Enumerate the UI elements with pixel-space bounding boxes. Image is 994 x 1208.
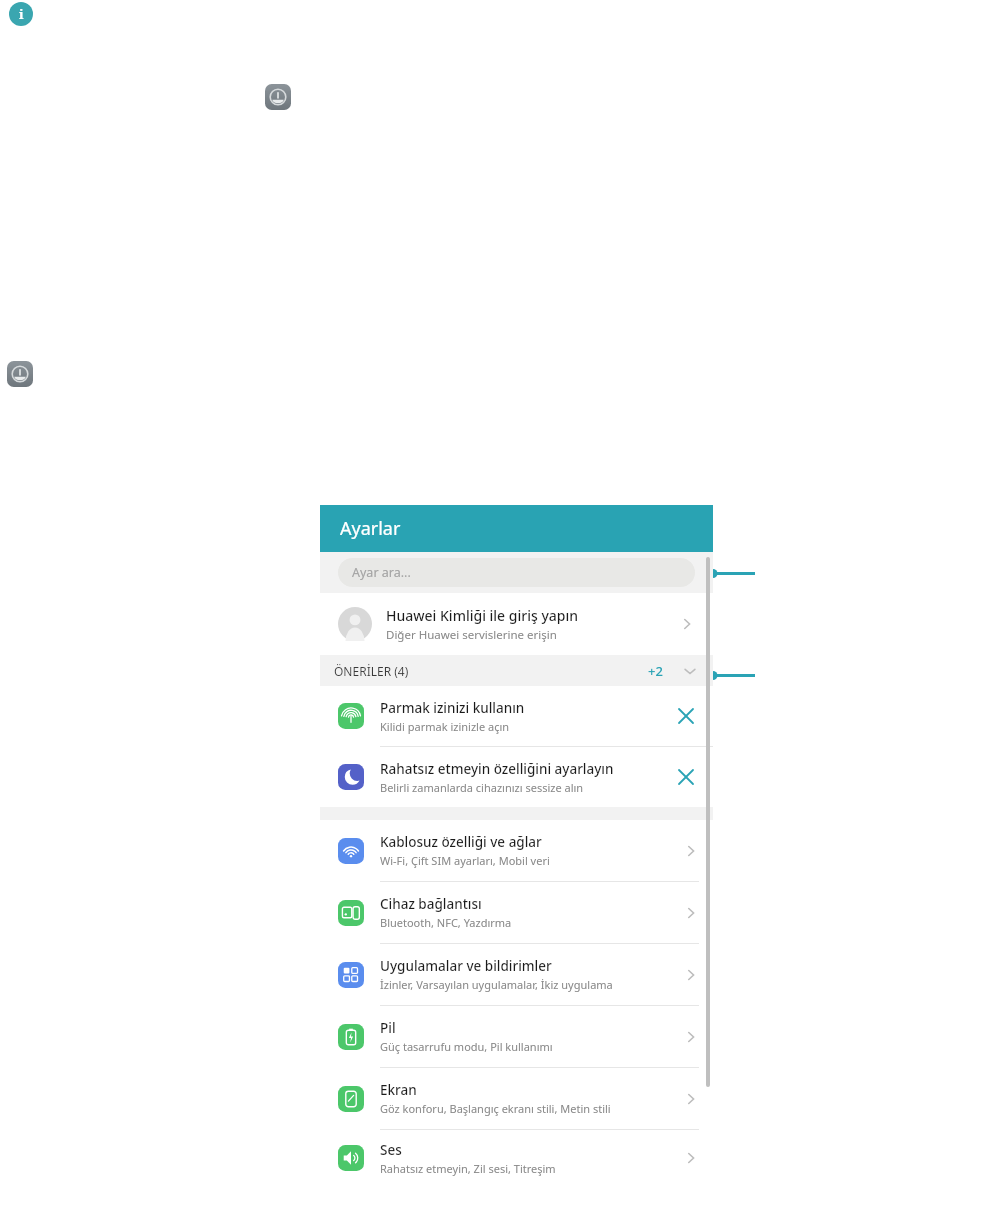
staticText: Cihaz bağlantısı [380, 895, 482, 913]
button[interactable]: Uygulamalar ve bildirimler [320, 944, 713, 1005]
staticText: Belirli zamanlarda cihazınızı sessize al… [380, 780, 584, 795]
button[interactable]: Parmak izinizi kullanın [320, 686, 713, 746]
staticText: i [19, 5, 24, 23]
staticText: Kilidi parmak izinizle açın [380, 719, 510, 734]
staticText: Rahatsız etmeyin, Zil sesi, Titreşim [380, 1161, 556, 1176]
button[interactable]: Ses [320, 1130, 713, 1186]
button[interactable]: Ekran [320, 1068, 713, 1129]
staticText: Kablosuz özelliği ve ağlar [380, 833, 542, 851]
staticText: +2 [648, 662, 663, 680]
button[interactable]: Kapat [673, 703, 699, 729]
staticText: Uygulamalar ve bildirimler [380, 957, 552, 975]
staticText: Diğer Huawei servislerine erişin [386, 627, 557, 643]
button[interactable]: Kablosuz özelliği ve ağlar [320, 820, 713, 881]
staticText: Ayarlar [340, 516, 401, 541]
staticText: Göz konforu, Başlangıç ekranı stili, Met… [380, 1101, 611, 1116]
staticText: Bluetooth, NFC, Yazdırma [380, 915, 512, 930]
staticText: ÖNERİLER (4) [334, 663, 409, 679]
staticText: Pil [380, 1019, 396, 1037]
button[interactable]: Huawei Kimliği ile giriş yapın [320, 593, 713, 655]
button[interactable]: Kapat [673, 764, 699, 790]
button[interactable]: Rahatsız etmeyin özelliğini ayarlayın [320, 747, 713, 807]
staticText: Huawei Kimliği ile giriş yapın [386, 606, 579, 625]
staticText: İzinler, Varsayılan uygulamalar, İkiz uy… [380, 977, 613, 992]
staticText: Rahatsız etmeyin özelliğini ayarlayın [380, 760, 614, 778]
staticText: Ekran [380, 1081, 417, 1099]
button[interactable]: ÖNERİLER (4) [320, 655, 713, 686]
button[interactable]: Cihaz bağlantısı [320, 882, 713, 943]
staticText: Ayar ara... [352, 564, 411, 581]
button[interactable]: Pil [320, 1006, 713, 1067]
staticText: Parmak izinizi kullanın [380, 699, 525, 717]
button[interactable]: Ayar ara... [338, 558, 695, 587]
staticText: Güç tasarrufu modu, Pil kullanımı [380, 1039, 553, 1054]
staticText: Wi-Fi, Çift SIM ayarları, Mobil veri [380, 853, 550, 868]
staticText: Ses [380, 1141, 402, 1159]
